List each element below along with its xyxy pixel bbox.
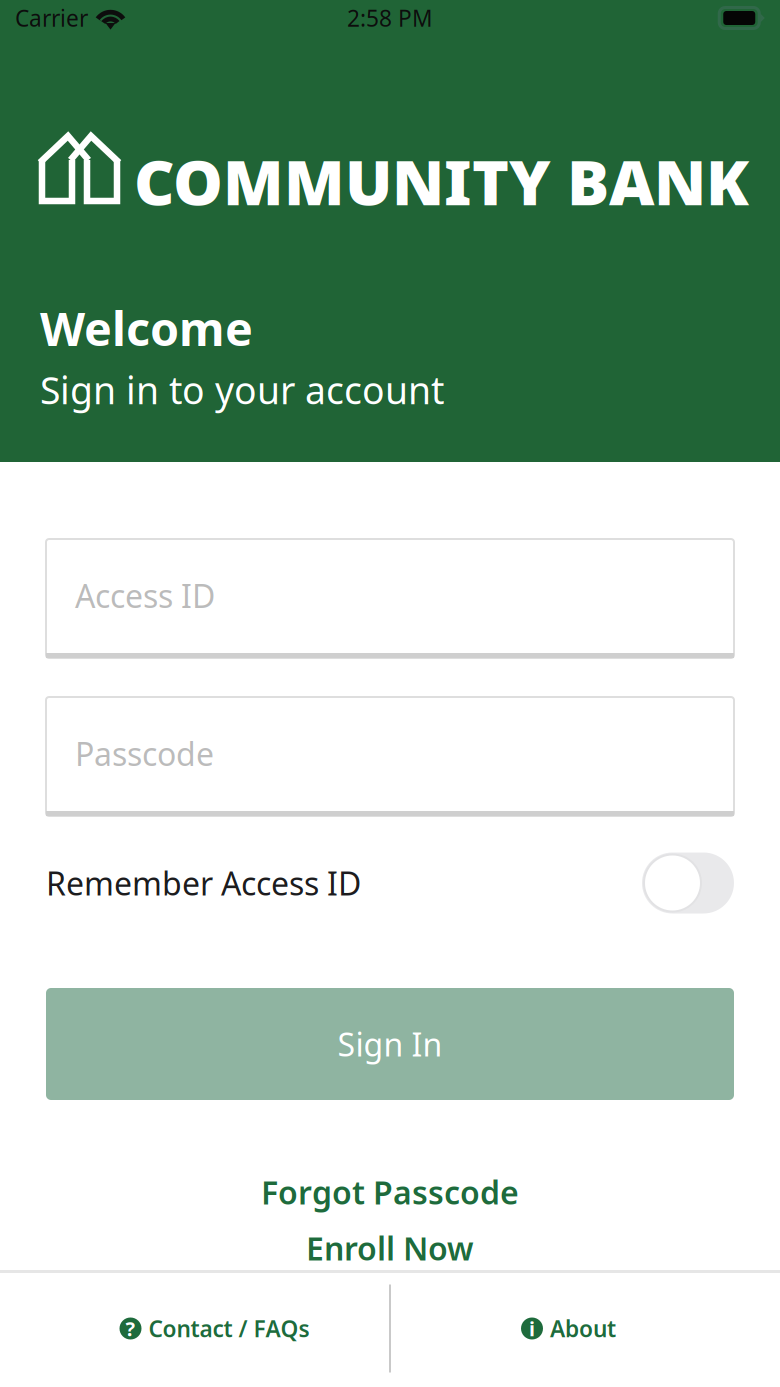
button[interactable]: Forgot Passcode <box>0 1167 780 1217</box>
button[interactable]: ? <box>0 1270 389 1387</box>
button[interactable]: Enroll Now <box>0 1223 780 1273</box>
button[interactable]: Passcode <box>0 697 780 816</box>
staticText: Contact / FAQs <box>148 1313 309 1343</box>
staticText: Remember Access ID <box>46 862 361 904</box>
button[interactable]: i <box>391 1270 780 1387</box>
staticText: Passcode <box>75 732 214 775</box>
button[interactable]: Remember Access ID <box>0 852 780 914</box>
button[interactable]: Access ID <box>0 539 780 658</box>
staticText: COMMUNITY BANK <box>134 139 749 223</box>
staticText: About <box>550 1313 616 1343</box>
button[interactable]: Sign In <box>0 988 780 1100</box>
staticText: i <box>529 1315 535 1342</box>
staticText: Welcome <box>40 297 253 359</box>
staticText: Access ID <box>75 574 215 617</box>
staticText: Sign In <box>337 1023 442 1065</box>
staticText: Forgot Passcode <box>261 1171 519 1213</box>
staticText: Sign in to your account <box>40 365 444 415</box>
staticText: Enroll Now <box>306 1227 474 1269</box>
staticText: Carrier <box>15 3 88 33</box>
staticText: 2:58 PM <box>347 3 433 33</box>
staticText: ? <box>125 1315 135 1342</box>
